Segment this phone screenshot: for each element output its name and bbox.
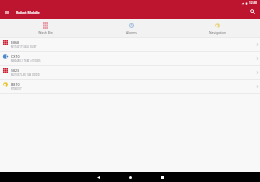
staticText: M21037-L85 14B ODDD — [11, 73, 40, 77]
button[interactable]: Open navigation drawer — [1, 7, 12, 18]
button[interactable]: Alarms — [88, 19, 174, 37]
button[interactable]: B810 — [0, 80, 260, 93]
staticText: S823 — [11, 68, 20, 73]
staticText: Robot Mobile — [16, 10, 40, 15]
staticText: M1743171-BLK DUST — [11, 45, 37, 49]
staticText: 12:30 — [249, 1, 258, 5]
button[interactable]: S823 — [0, 66, 260, 79]
button[interactable]: Recent apps — [146, 172, 178, 182]
button[interactable]: Back — [82, 172, 114, 182]
button[interactable]: CX10 — [0, 52, 260, 65]
button[interactable]: Wash Bin — [2, 19, 88, 37]
staticText: Wash Bin — [38, 30, 53, 34]
staticText: B810 — [11, 82, 20, 87]
button[interactable]: Search — [247, 7, 258, 18]
staticText: Navigation — [209, 30, 226, 34]
staticText: RT00017 — [11, 87, 22, 91]
staticText: CX10 — [11, 54, 20, 59]
staticText: M80480-1 TEAT v110005 — [11, 59, 41, 63]
button[interactable]: E868 — [0, 38, 260, 51]
button[interactable]: Home — [114, 172, 146, 182]
staticText: Alarms — [126, 30, 137, 34]
button[interactable]: Navigation — [174, 19, 260, 37]
staticText: E868 — [11, 40, 20, 45]
